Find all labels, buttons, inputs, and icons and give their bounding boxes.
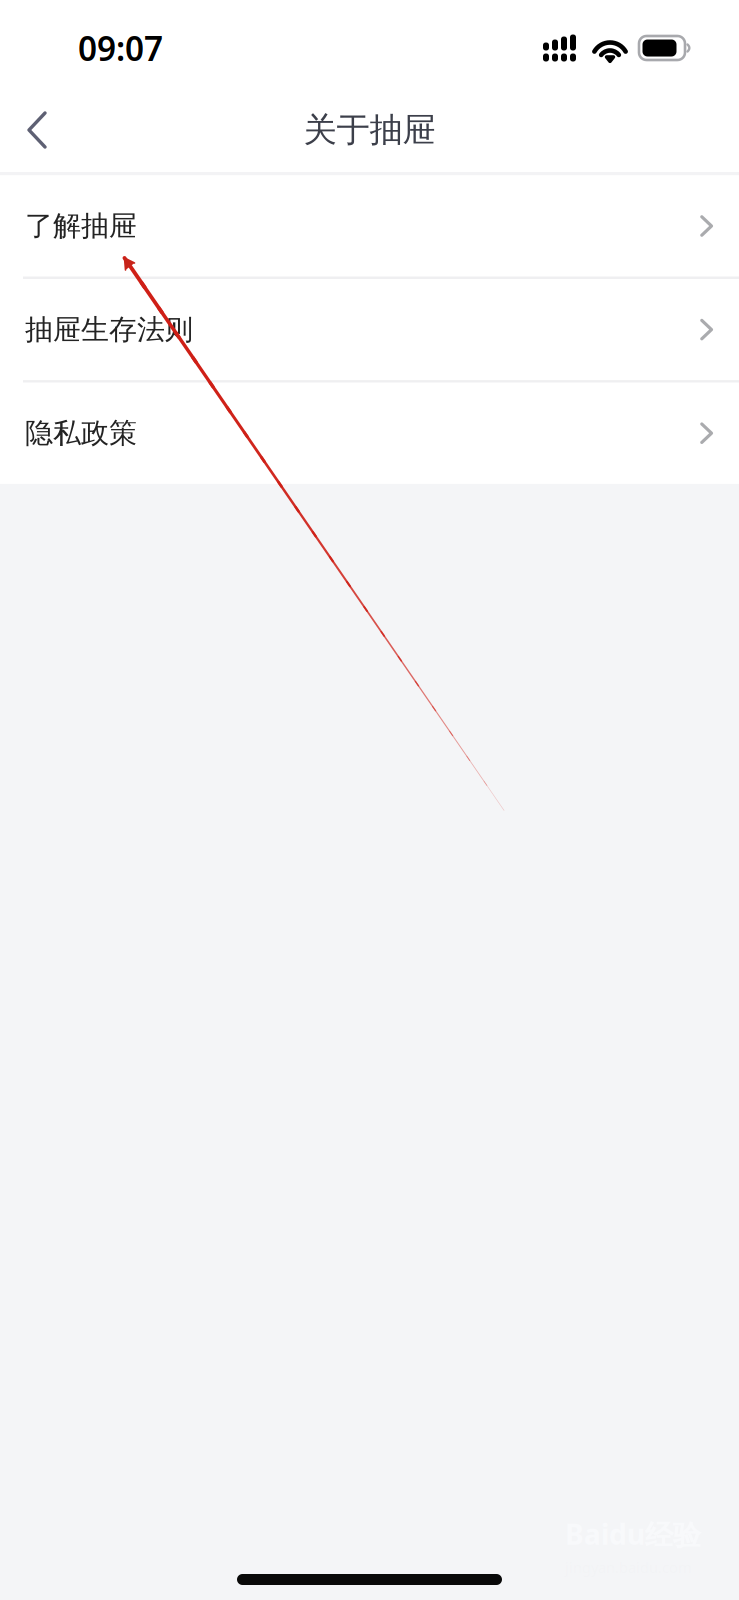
staticText: 抽屉生存法则 <box>25 312 193 347</box>
staticText: 隐私政策 <box>25 416 137 450</box>
button[interactable]: 抽屉生存法则 <box>0 279 739 380</box>
button[interactable]: 返回 <box>0 88 74 172</box>
staticText: 了解抽屉 <box>25 209 137 243</box>
staticText: 09:07 <box>78 26 163 70</box>
button[interactable]: 隐私政策 <box>0 383 739 484</box>
button[interactable]: 了解抽屉 <box>0 175 739 276</box>
staticText: 关于抽屉 <box>303 109 435 150</box>
